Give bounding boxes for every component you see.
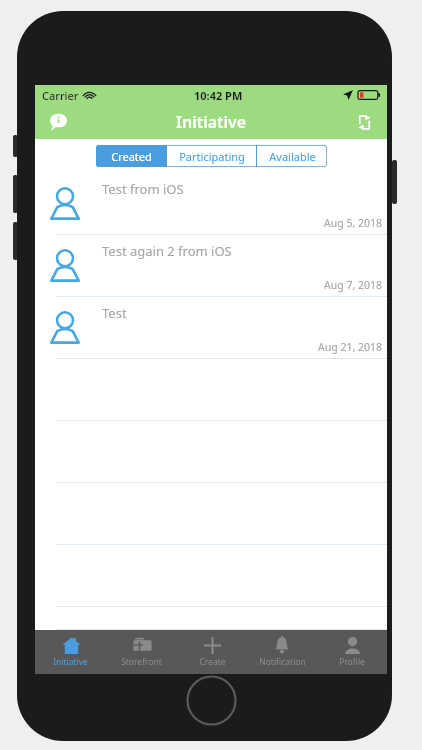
button[interactable]: Test again 2 from iOS <box>35 235 387 297</box>
staticText: Available <box>269 149 316 164</box>
staticText: Test from iOS <box>102 180 184 198</box>
button[interactable]: Created <box>96 145 166 167</box>
staticText: Initiative <box>53 656 88 668</box>
button[interactable]: Available <box>257 145 327 167</box>
button[interactable]: Info <box>43 107 73 137</box>
staticText: Aug 21, 2018 <box>318 340 382 354</box>
staticText: Storefront <box>121 656 162 668</box>
button[interactable]: Initiative <box>35 630 106 674</box>
button[interactable]: Notification <box>247 630 317 674</box>
button[interactable]: Create <box>177 630 247 674</box>
staticText: Carrier <box>42 88 79 103</box>
staticText: Test again 2 from iOS <box>102 242 232 260</box>
button[interactable]: Participating <box>167 145 256 167</box>
staticText: Participating <box>179 149 245 164</box>
staticText: Profile <box>339 656 365 668</box>
staticText: Aug 5, 2018 <box>324 216 382 230</box>
staticText: Aug 7, 2018 <box>324 278 382 292</box>
staticText: Created <box>111 149 152 164</box>
button[interactable]: Test <box>35 297 387 359</box>
staticText: Test <box>102 304 127 322</box>
button[interactable]: Test from iOS <box>35 173 387 235</box>
button[interactable]: Profile <box>317 630 387 674</box>
staticText: Initiative <box>176 111 247 133</box>
staticText: 10:42 PM <box>194 88 243 103</box>
staticText: Notification <box>259 656 306 668</box>
staticText: Create <box>199 656 226 668</box>
button[interactable]: Refresh <box>349 107 379 137</box>
button[interactable]: Storefront <box>106 630 177 674</box>
